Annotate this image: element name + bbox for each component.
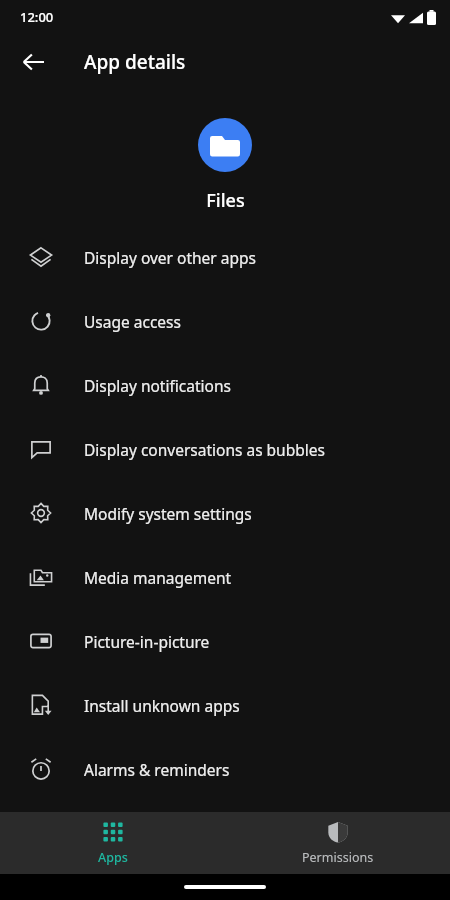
- button[interactable]: Back: [10, 39, 56, 85]
- staticText: Alarms & reminders: [84, 759, 230, 780]
- button[interactable]: Install unknown apps: [0, 673, 450, 737]
- button[interactable]: Modify system settings: [0, 481, 450, 545]
- staticText: Files: [206, 188, 245, 213]
- staticText: Picture-in-picture: [84, 631, 210, 652]
- staticText: Display over other apps: [84, 247, 256, 268]
- staticText: Install unknown apps: [84, 695, 240, 716]
- staticText: Display notifications: [84, 375, 231, 396]
- staticText: Media management: [84, 567, 232, 588]
- staticText: App details: [84, 49, 186, 75]
- button[interactable]: Display over other apps: [0, 225, 450, 289]
- staticText: Usage access: [84, 311, 181, 332]
- staticText: Permissions: [302, 849, 374, 866]
- staticText: 12:00: [20, 8, 54, 26]
- button[interactable]: Display notifications: [0, 353, 450, 417]
- button[interactable]: Media management: [0, 545, 450, 609]
- staticText: Display conversations as bubbles: [84, 439, 325, 460]
- staticText: Apps: [98, 849, 128, 866]
- button[interactable]: Picture-in-picture: [0, 609, 450, 673]
- button[interactable]: Display conversations as bubbles: [0, 417, 450, 481]
- button[interactable]: Alarms & reminders: [0, 737, 450, 801]
- button[interactable]: Apps: [0, 812, 225, 874]
- button[interactable]: Permissions: [225, 812, 450, 874]
- staticText: Modify system settings: [84, 503, 252, 524]
- button[interactable]: Usage access: [0, 289, 450, 353]
